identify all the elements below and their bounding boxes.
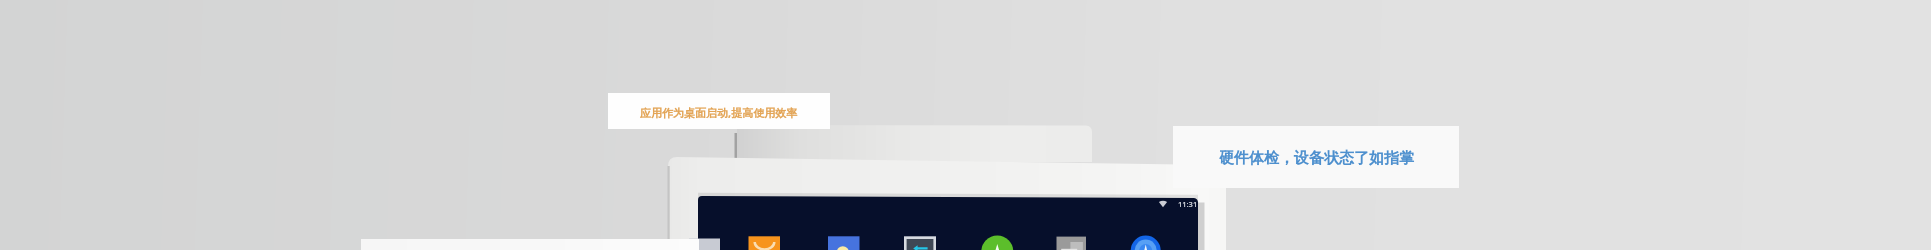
button[interactable]: 硬件体检，设备状态了如指掌	[1173, 126, 1459, 188]
staticText: 硬件体检，设备状态了如指掌	[1219, 149, 1414, 168]
staticText: 应用作为桌面启动,提高使用效率	[640, 105, 798, 120]
staticText: 11:31	[1178, 199, 1198, 209]
button[interactable]: 应用作为桌面启动,提高使用效率	[608, 93, 830, 129]
